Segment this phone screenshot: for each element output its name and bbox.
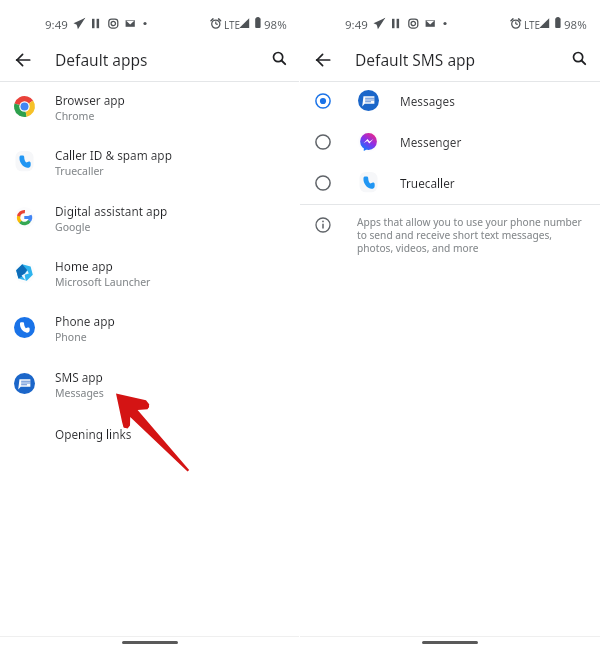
staticText: Opening links (55, 426, 132, 442)
staticText: 9:49 (45, 17, 68, 33)
button[interactable]: Truecaller (300, 162, 600, 203)
staticText: SMS app (55, 369, 103, 385)
button[interactable]: Messages (300, 80, 600, 121)
button[interactable]: Opening links (0, 406, 299, 461)
button[interactable]: Back (310, 47, 336, 73)
staticText: Messenger (400, 134, 462, 150)
staticText: Google (55, 220, 91, 234)
staticText: 98% (264, 17, 287, 33)
staticText: Default apps (55, 49, 148, 70)
button[interactable]: Search (568, 48, 592, 72)
staticText: Phone app (55, 313, 115, 329)
button[interactable]: Caller ID & spam app (0, 134, 299, 189)
staticText: Messages (55, 386, 104, 400)
staticText: Apps that allow you to use your phone nu… (357, 215, 582, 255)
button[interactable]: Back (10, 47, 36, 73)
staticText: Truecaller (400, 175, 455, 191)
staticText: LTE (524, 18, 541, 32)
button[interactable]: Home app (0, 245, 299, 300)
button[interactable]: Digital assistant app (0, 190, 299, 245)
staticText: Phone (55, 330, 87, 344)
staticText: Truecaller (55, 164, 104, 178)
staticText: Caller ID & spam app (55, 147, 172, 163)
staticText: LTE (224, 18, 241, 32)
button[interactable]: Phone app (0, 300, 299, 355)
staticText: 98% (564, 17, 587, 33)
button[interactable]: Search (268, 48, 292, 72)
staticText: 9:49 (345, 17, 368, 33)
staticText: Digital assistant app (55, 203, 168, 219)
staticText: Messages (400, 93, 455, 109)
staticText: Default SMS app (355, 49, 476, 70)
button[interactable]: SMS app (0, 356, 299, 411)
staticText: Chrome (55, 109, 95, 123)
staticText: Browser app (55, 92, 125, 108)
staticText: Home app (55, 258, 113, 274)
button[interactable]: Browser app (0, 79, 299, 134)
staticText: Microsoft Launcher (55, 275, 151, 289)
button[interactable]: Messenger (300, 121, 600, 162)
